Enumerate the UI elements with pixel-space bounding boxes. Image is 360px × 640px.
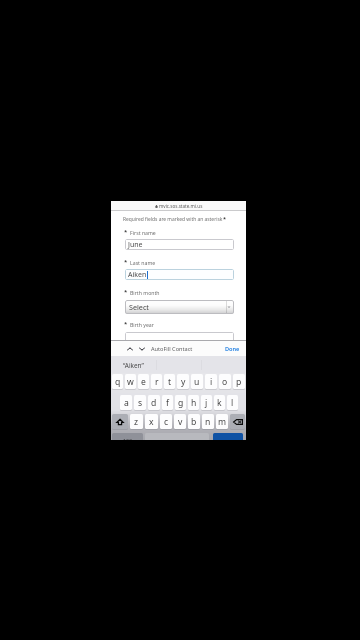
button[interactable]: h xyxy=(188,395,199,410)
button[interactable]: o xyxy=(219,374,231,389)
staticText: 123 xyxy=(123,437,132,440)
staticText: u xyxy=(194,376,200,388)
button[interactable]: e xyxy=(138,374,149,389)
staticText: Done xyxy=(225,345,240,353)
staticText: Select xyxy=(129,302,149,312)
button[interactable] xyxy=(125,332,234,343)
staticText: g xyxy=(178,397,184,409)
button[interactable]: f xyxy=(162,395,173,410)
staticText: * xyxy=(124,320,128,328)
staticText: Birth year xyxy=(130,321,154,328)
button[interactable]: Previous field xyxy=(126,345,134,353)
button[interactable]: d xyxy=(148,395,160,410)
staticText: p xyxy=(236,376,242,388)
staticText: m xyxy=(218,416,227,428)
staticText: mvic.sos.state.mi.us xyxy=(159,203,203,209)
staticText: z xyxy=(134,416,139,428)
button[interactable]: k xyxy=(214,395,225,410)
staticText: t xyxy=(168,376,172,388)
staticText: b xyxy=(191,416,197,428)
button[interactable]: p xyxy=(233,374,245,389)
staticText: n xyxy=(205,416,211,428)
staticText: e xyxy=(141,376,146,388)
button[interactable]: g xyxy=(175,395,186,410)
button[interactable]: u xyxy=(191,374,203,389)
button[interactable]: “Aiken” xyxy=(111,356,156,374)
button[interactable]: Aiken xyxy=(125,269,234,280)
button[interactable]: Address bar xyxy=(111,201,246,210)
button[interactable]: m xyxy=(216,414,228,429)
button[interactable]: q xyxy=(112,374,123,389)
button[interactable]: Done xyxy=(225,345,240,353)
staticText: x xyxy=(149,416,154,428)
button[interactable]: t xyxy=(164,374,175,389)
button[interactable]: Numbers and symbols xyxy=(112,433,143,440)
button[interactable]: n xyxy=(202,414,214,429)
staticText: y xyxy=(181,376,186,388)
staticText: First name xyxy=(130,229,156,236)
staticText: Required fields are marked with an aster… xyxy=(123,216,223,223)
button[interactable]: Backspace xyxy=(230,414,245,429)
button[interactable]: x xyxy=(145,414,158,429)
button[interactable]: a xyxy=(120,395,132,410)
button[interactable]: l xyxy=(227,395,238,410)
button[interactable]: v xyxy=(174,414,186,429)
staticText: * xyxy=(223,215,227,223)
staticText: c xyxy=(164,416,169,428)
staticText: s xyxy=(138,397,143,409)
button[interactable]: Select xyxy=(125,300,234,314)
staticText: q xyxy=(115,376,121,388)
staticText: Aiken xyxy=(128,270,147,280)
staticText: i xyxy=(210,376,213,388)
button[interactable]: i xyxy=(205,374,217,389)
button[interactable]: z xyxy=(130,414,143,429)
staticText: k xyxy=(217,397,222,409)
button[interactable]: June xyxy=(125,239,234,250)
staticText: r xyxy=(155,376,159,388)
button[interactable]: s xyxy=(134,395,146,410)
staticText: v xyxy=(178,416,183,428)
staticText: f xyxy=(166,397,169,409)
staticText: o xyxy=(222,376,228,388)
button[interactable]: b xyxy=(188,414,200,429)
staticText: AutoFill Contact xyxy=(151,345,193,353)
staticText: w xyxy=(127,376,134,388)
staticText: Last name xyxy=(130,259,156,266)
staticText: * xyxy=(124,258,128,266)
staticText: * xyxy=(124,288,128,296)
staticText: h xyxy=(191,397,197,409)
button[interactable]: c xyxy=(160,414,172,429)
button[interactable]: Shift xyxy=(112,414,128,429)
button[interactable]: w xyxy=(125,374,136,389)
button[interactable]: Next field xyxy=(138,345,146,353)
staticText: a xyxy=(124,397,129,409)
button[interactable]: r xyxy=(151,374,162,389)
button[interactable]: go xyxy=(213,433,243,440)
button[interactable]: AutoFill Contact xyxy=(151,345,193,353)
staticText: * xyxy=(124,228,128,236)
staticText: j xyxy=(205,397,208,409)
button[interactable]: j xyxy=(201,395,212,410)
staticText: “Aiken” xyxy=(123,361,144,370)
staticText: Birth month xyxy=(130,289,160,296)
staticText: l xyxy=(231,397,234,409)
staticText: d xyxy=(151,397,157,409)
button[interactable]: y xyxy=(177,374,189,389)
staticText: June xyxy=(128,240,143,250)
